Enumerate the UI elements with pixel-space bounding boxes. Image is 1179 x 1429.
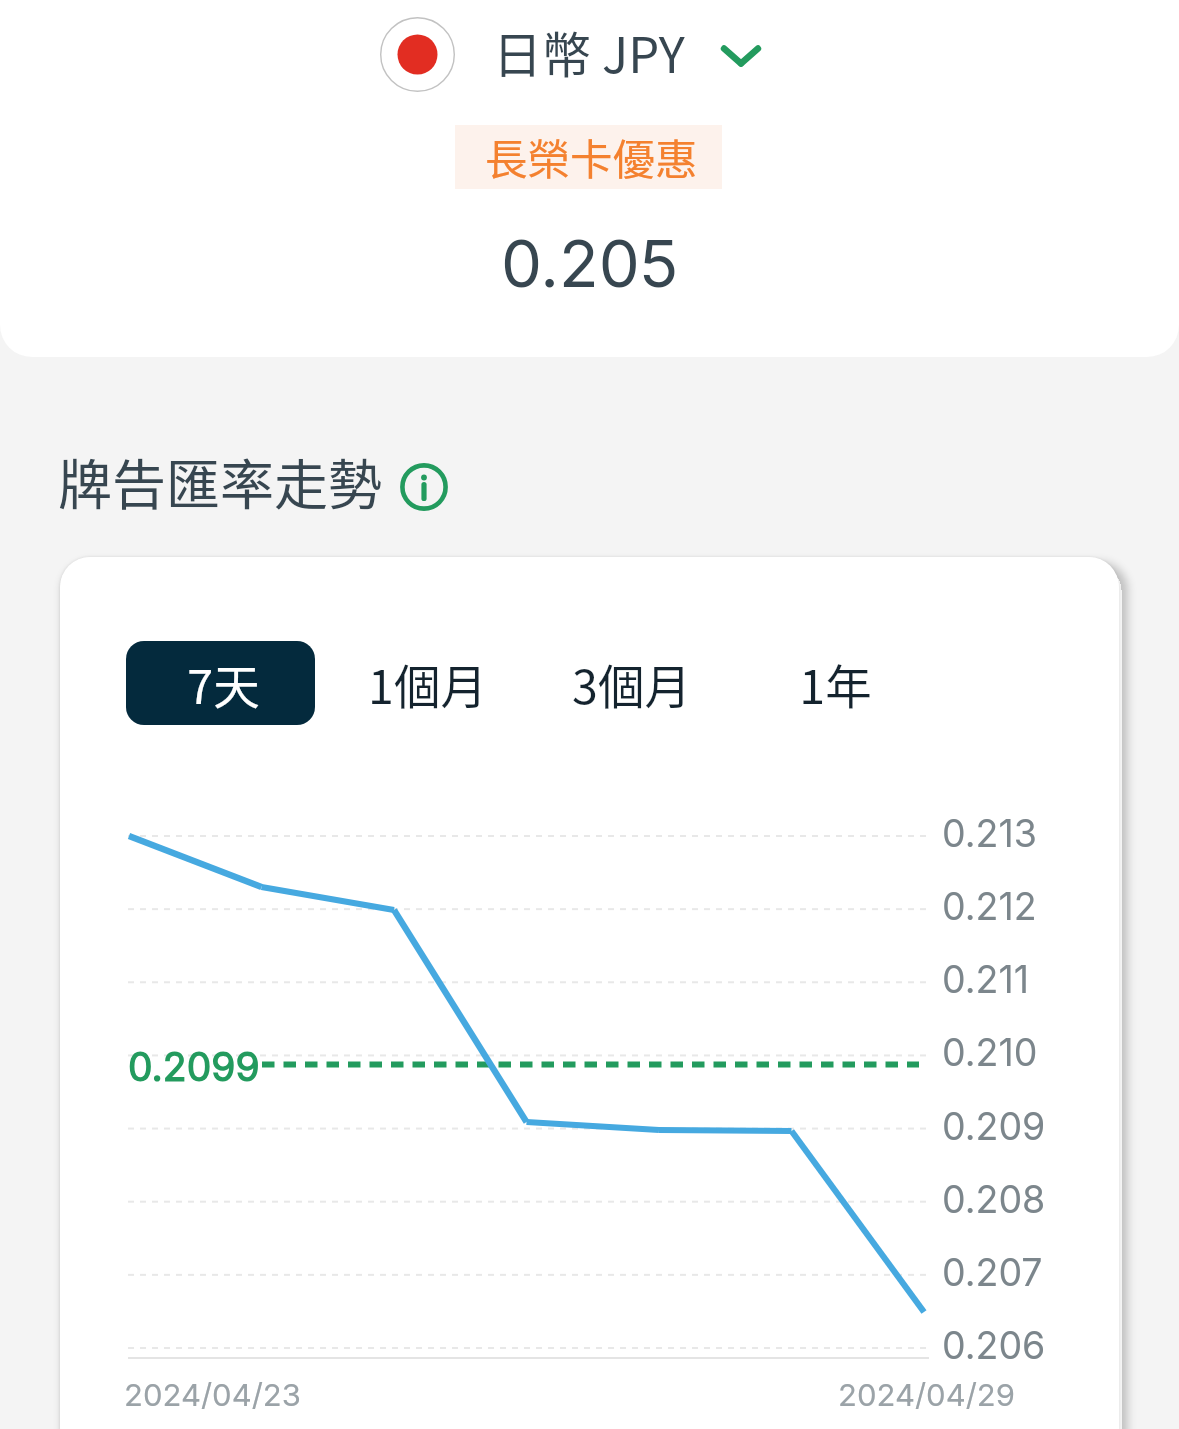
button[interactable]: 7天 — [121, 641, 325, 725]
staticText: 0.208 — [942, 1177, 1046, 1222]
button[interactable]: 1個月 — [325, 641, 529, 725]
staticText: 0.209 — [942, 1104, 1046, 1149]
staticText: 長榮卡優惠 — [485, 126, 698, 188]
staticText: 7天 — [187, 650, 260, 717]
staticText: 牌告匯率走勢 — [58, 442, 382, 520]
staticText: 日幣 JPY — [493, 16, 685, 87]
button[interactable]: 1年 — [733, 641, 937, 725]
staticText: 0.213 — [942, 811, 1037, 856]
staticText: 2024/04/23 — [124, 1376, 301, 1414]
staticText: 0.2099 — [128, 1043, 260, 1090]
staticText: 0.212 — [942, 884, 1037, 929]
staticText: 0.210 — [942, 1030, 1038, 1075]
button[interactable]: 日幣 JPY — [370, 8, 770, 100]
button[interactable]: 3個月 — [529, 641, 733, 725]
staticText: 3個月 — [572, 650, 691, 717]
button[interactable]: 長榮卡優惠 — [455, 125, 722, 189]
button[interactable]: Information about exchange rate trend — [398, 461, 450, 513]
staticText: 0.207 — [942, 1250, 1043, 1295]
staticText: 2024/04/29 — [838, 1376, 1015, 1414]
staticText: 0.206 — [942, 1323, 1046, 1368]
staticText: 0.205 — [501, 224, 679, 303]
staticText: 0.211 — [942, 957, 1029, 1002]
staticText: 1個月 — [368, 650, 487, 717]
staticText: 1年 — [799, 650, 872, 717]
